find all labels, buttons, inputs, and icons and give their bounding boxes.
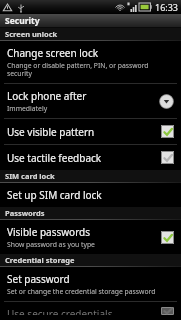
button[interactable]: Checked — [160, 124, 175, 139]
staticText: Immediately — [7, 104, 48, 113]
staticText: Lock phone after — [7, 89, 87, 103]
staticText: Visible passwords — [7, 225, 91, 239]
staticText: 16:33 — [155, 1, 179, 13]
button[interactable]: Lock phone after — [0, 84, 181, 118]
staticText: Set up SIM card lock — [7, 188, 102, 202]
staticText: Change or disable pattern, PIN, or passw… — [7, 61, 175, 78]
button[interactable]: Change screen lock — [0, 41, 181, 83]
staticText: Set password — [7, 272, 70, 286]
staticText: Passwords — [5, 208, 45, 218]
button[interactable]: Use visible pattern — [0, 119, 181, 144]
button[interactable]: Unchecked — [160, 307, 175, 315]
staticText: Set or change the credential storage pas… — [7, 287, 156, 296]
button[interactable]: Open options — [158, 93, 175, 110]
staticText: Screen unlock — [5, 29, 58, 39]
staticText: Use secure credentials — [7, 307, 113, 315]
staticText: Security — [5, 15, 40, 27]
button[interactable]: Use secure credentials — [0, 302, 181, 320]
button[interactable]: Checked — [160, 230, 175, 245]
button[interactable]: Unchecked — [160, 150, 175, 165]
staticText: SIM card lock — [5, 171, 55, 181]
button[interactable]: Set password — [0, 267, 181, 301]
staticText: Credential storage — [5, 255, 75, 265]
staticText: Use tactile feedback — [7, 151, 102, 165]
staticText: Change screen lock — [7, 46, 99, 60]
button[interactable]: Use tactile feedback — [0, 145, 181, 170]
staticText: Use visible pattern — [7, 125, 95, 139]
staticText: Show password as you type — [7, 240, 95, 249]
button[interactable]: Set up SIM card lock — [0, 183, 181, 207]
button[interactable]: Visible passwords — [0, 220, 181, 254]
